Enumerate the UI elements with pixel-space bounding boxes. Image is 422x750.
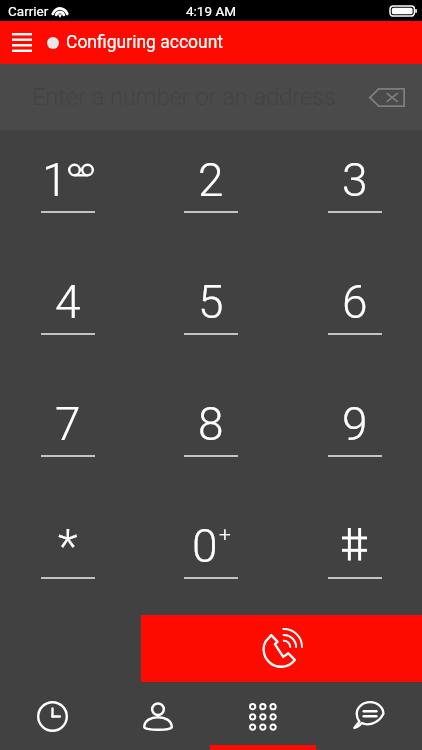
button[interactable]: Call [141,615,422,682]
button[interactable]: 1 [0,130,140,252]
button[interactable]: Contacts [105,682,210,750]
button[interactable]: Messages [316,682,422,750]
staticText: 2 [198,153,224,207]
staticText: 8 [198,397,224,451]
button[interactable]: * [0,496,140,615]
staticText: 3 [342,153,368,207]
button[interactable]: 6 [281,252,422,374]
button[interactable]: Menu [0,21,43,64]
staticText: 4 [55,275,81,329]
button[interactable]: Keypad [210,682,316,750]
staticText: 6 [342,275,368,329]
button[interactable]: 5 [140,252,281,374]
staticText: 1 [42,153,68,207]
staticText: 7 [55,397,81,451]
button[interactable]: 3 [281,130,422,252]
button[interactable]: 2 [140,130,281,252]
staticText: * [58,519,78,573]
button[interactable]: Backspace [361,71,413,123]
button[interactable]: 9 [281,374,422,496]
staticText: 9 [342,397,368,451]
button[interactable]: 8 [140,374,281,496]
staticText: Carrier [8,3,49,19]
button[interactable]: 4 [0,252,140,374]
button[interactable]: Recents [0,682,105,750]
staticText: 4:19 AM [186,3,236,19]
button[interactable]: 0 [140,496,281,615]
staticText: 0 [192,519,218,573]
staticText: + [219,522,231,547]
staticText: 5 [198,275,224,329]
button[interactable]: 7 [0,374,140,496]
staticText: Configuring account [66,32,224,53]
button[interactable] [281,496,422,615]
